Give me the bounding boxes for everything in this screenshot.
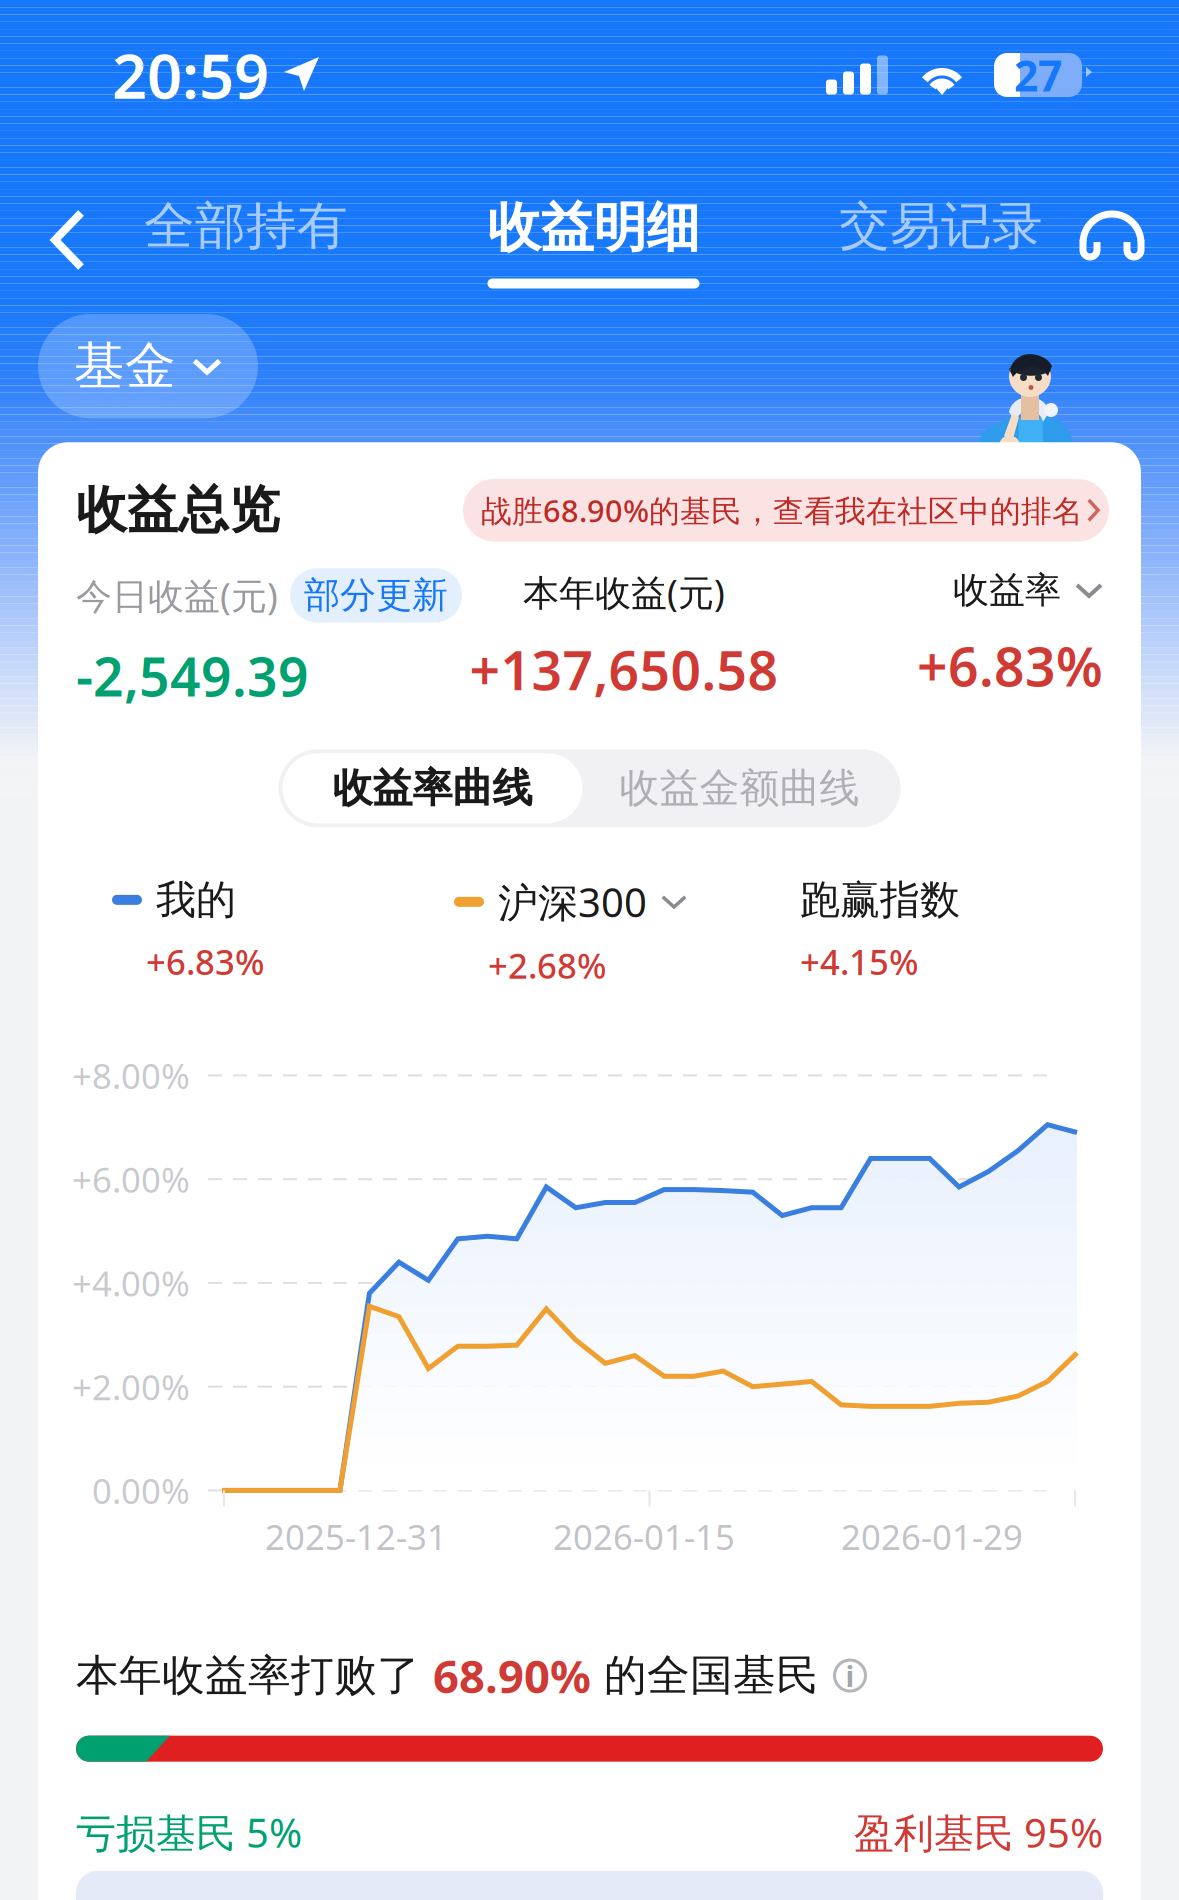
button[interactable]: 收益明细 (475, 195, 711, 288)
staticText: 沪深300 (498, 875, 647, 928)
staticText: 收益金额曲线 (619, 764, 859, 813)
staticText: 全部持有 (144, 195, 348, 257)
staticText: 2026-01-29 (841, 1513, 1023, 1559)
staticText: 20:59 (112, 34, 269, 116)
staticText: 的全国基民 (591, 1649, 819, 1702)
staticText: 收益明细 (487, 195, 699, 260)
staticText: 盈利基民 95% (854, 1806, 1103, 1859)
staticText: +137,650.58 (469, 634, 778, 705)
staticText: +2.00% (72, 1364, 190, 1410)
staticText: 跑赢指数 (800, 875, 960, 924)
staticText: 交易记录 (839, 195, 1043, 257)
button[interactable]: Customer service (1063, 195, 1161, 265)
staticText: 今日收益(元) (76, 571, 278, 619)
button[interactable]: 收益率曲线 (282, 753, 582, 823)
staticText: +4.15% (800, 938, 919, 984)
staticText: 2025-12-31 (265, 1513, 447, 1559)
staticText: +6.00% (72, 1156, 190, 1202)
staticText: +6.83% (917, 630, 1103, 701)
staticText: 收益率曲线 (332, 764, 532, 813)
staticText: 部分更新 (304, 573, 448, 617)
staticText: i (845, 1656, 854, 1695)
staticText: 2026-01-15 (553, 1513, 735, 1559)
staticText: -2,549.39 (76, 640, 309, 711)
staticText: +2.68% (488, 942, 607, 988)
button[interactable]: 收益金额曲线 (582, 753, 896, 823)
button[interactable]: Info (819, 1648, 867, 1703)
staticText: 0.00% (92, 1467, 190, 1513)
button[interactable]: Back (24, 195, 114, 295)
staticText: 我的 (156, 875, 236, 924)
button[interactable]: 交易记录 (823, 195, 1059, 285)
staticText: 收益率 (953, 568, 1061, 612)
staticText: +6.83% (146, 938, 265, 984)
staticText: 基金 (74, 335, 176, 397)
staticText: 亏损基民 5% (76, 1806, 302, 1859)
staticText: +4.00% (72, 1260, 190, 1306)
staticText: 68.90% (433, 1645, 591, 1706)
staticText: 本年收益(元) (523, 568, 725, 616)
staticText: 27 (1014, 47, 1062, 103)
button[interactable]: 战胜68.90%的基民，查看我在社区中的排名 (463, 479, 1109, 542)
button[interactable]: 全部持有 (128, 195, 364, 285)
staticText: 收益总览 (76, 479, 280, 541)
staticText: 战胜68.90%的基民，查看我在社区中的排名 (481, 490, 1083, 531)
button[interactable]: 基金 (38, 314, 258, 418)
staticText: +8.00% (72, 1052, 190, 1098)
staticText: 本年收益率打败了 (76, 1649, 433, 1702)
